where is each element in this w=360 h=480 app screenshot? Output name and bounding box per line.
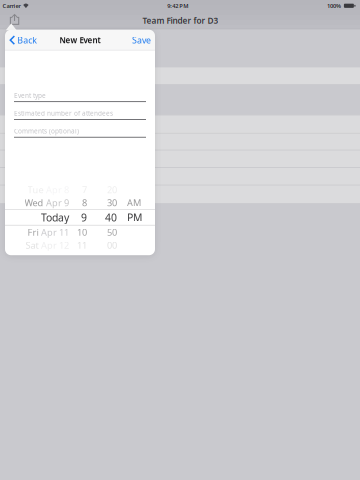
- staticText: Tue: [28, 183, 44, 196]
- staticText: Apr 11: [41, 226, 69, 238]
- staticText: 00: [107, 239, 117, 251]
- staticText: 40: [105, 210, 117, 225]
- staticText: Carrier: [2, 2, 20, 10]
- staticText: Team Finder for D3: [142, 15, 218, 26]
- staticText: Wed: [25, 196, 44, 209]
- staticText: Sat: [26, 239, 39, 251]
- staticText: 11: [77, 239, 87, 251]
- staticText: Save: [132, 34, 151, 46]
- staticText: 20: [107, 183, 117, 196]
- staticText: 9: [81, 210, 87, 225]
- staticText: Estimated number of attendees: [14, 109, 113, 118]
- staticText: Apr 12: [41, 239, 69, 251]
- staticText: 30: [107, 196, 117, 209]
- staticText: Back: [17, 34, 37, 46]
- button[interactable]: Share: [0, 11, 29, 29]
- staticText: New Event: [59, 35, 100, 46]
- staticText: 9:42 PM: [167, 2, 188, 10]
- staticText: 8: [82, 196, 87, 209]
- button[interactable]: Save: [126, 30, 155, 51]
- staticText: 100%: [327, 2, 341, 10]
- staticText: 50: [107, 226, 117, 238]
- staticText: AM: [127, 196, 141, 209]
- staticText: Fri: [28, 226, 39, 238]
- staticText: 7: [82, 183, 87, 196]
- staticText: Apr 9: [46, 196, 69, 209]
- button[interactable]: Back: [5, 30, 43, 51]
- staticText: Comments (optional): [14, 127, 79, 135]
- staticText: PM: [127, 210, 142, 225]
- staticText: Event type: [14, 91, 46, 100]
- staticText: 10: [77, 226, 87, 238]
- staticText: Today: [41, 210, 69, 225]
